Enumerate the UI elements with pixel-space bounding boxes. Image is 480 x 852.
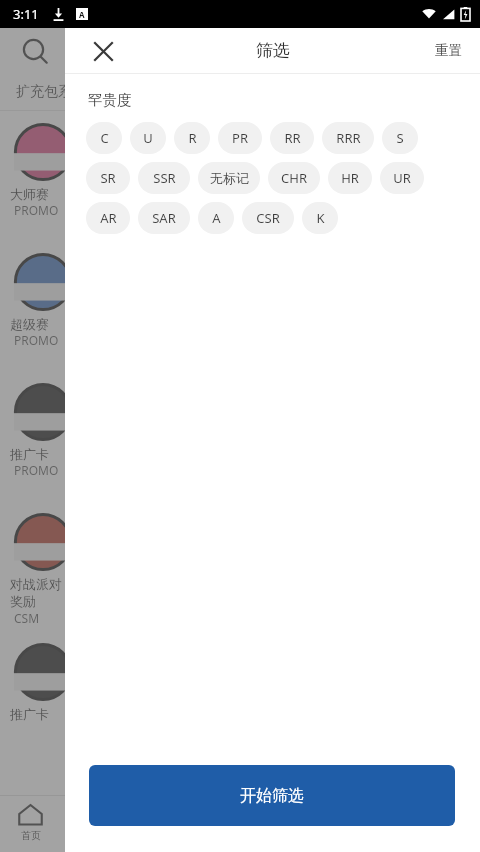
button[interactable]: Close <box>86 34 120 68</box>
staticText: 大师赛 <box>10 186 49 202</box>
staticText: UR <box>393 169 411 187</box>
staticText: 开始筛选 <box>240 786 304 806</box>
staticText: PROMO <box>14 202 59 218</box>
button[interactable]: UR <box>380 162 424 194</box>
button[interactable]: 开始筛选 <box>89 765 455 826</box>
staticText: PROMO <box>14 332 59 348</box>
staticText: SR <box>100 169 116 187</box>
button[interactable]: AR <box>86 202 130 234</box>
staticText: CHR <box>281 169 307 187</box>
staticText: 超级赛 <box>10 316 49 332</box>
button[interactable]: RRR <box>322 122 374 154</box>
button[interactable]: SSR <box>138 162 190 194</box>
staticText: U <box>143 129 153 147</box>
button[interactable]: SAR <box>138 202 190 234</box>
staticText: C <box>100 129 109 147</box>
staticText: K <box>316 209 325 227</box>
staticText: 罕贵度 <box>88 91 132 109</box>
button[interactable]: HR <box>328 162 372 194</box>
button[interactable]: 无标记 <box>198 162 260 194</box>
staticText: SAR <box>152 209 176 227</box>
staticText: 无标记 <box>210 170 249 186</box>
staticText: RRR <box>336 129 361 147</box>
button[interactable]: K <box>302 202 338 234</box>
button[interactable]: RR <box>270 122 314 154</box>
staticText: CSR <box>256 209 280 227</box>
button[interactable]: S <box>382 122 418 154</box>
staticText: 推广卡 <box>10 446 49 462</box>
staticText: CSM <box>14 610 40 626</box>
staticText: R <box>188 129 197 147</box>
button[interactable]: PR <box>218 122 262 154</box>
button[interactable]: CHR <box>268 162 320 194</box>
staticText: 筛选 <box>256 40 290 61</box>
staticText: S <box>396 129 404 147</box>
staticText: HR <box>341 169 359 187</box>
button[interactable]: CSR <box>242 202 294 234</box>
staticText: 首页 <box>21 829 41 842</box>
button[interactable]: R <box>174 122 210 154</box>
staticText: A <box>79 9 85 20</box>
staticText: 扩充包系列 <box>16 83 86 101</box>
staticText: A <box>212 209 221 227</box>
staticText: 推广卡 <box>10 706 49 722</box>
button[interactable]: SR <box>86 162 130 194</box>
staticText: PR <box>232 129 248 147</box>
button[interactable]: A <box>198 202 234 234</box>
button[interactable]: 重置 <box>417 32 480 69</box>
staticText: AR <box>100 209 117 227</box>
staticText: PROMO <box>14 462 59 478</box>
staticText: SSR <box>153 169 176 187</box>
staticText: 3:11 <box>13 5 39 23</box>
staticText: 对战派对 奖励 <box>10 576 62 610</box>
button[interactable]: C <box>86 122 122 154</box>
staticText: 重置 <box>435 42 462 59</box>
button[interactable]: U <box>130 122 166 154</box>
staticText: RR <box>284 129 301 147</box>
